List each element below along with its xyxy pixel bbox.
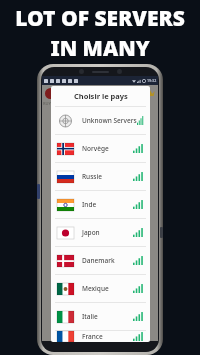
staticText: Mexique bbox=[82, 284, 109, 293]
staticText: Inde bbox=[82, 200, 97, 209]
button[interactable]: Premium bbox=[145, 88, 155, 98]
staticText: Danemark bbox=[82, 256, 115, 265]
staticText: France bbox=[82, 332, 103, 341]
button[interactable]: Japon bbox=[51, 219, 150, 246]
button[interactable]: France bbox=[51, 331, 150, 342]
staticText: RUYP bbox=[43, 101, 54, 106]
staticText: Norvège bbox=[82, 144, 109, 153]
button[interactable]: Norvège bbox=[51, 135, 150, 162]
staticText: 19:32 bbox=[147, 78, 157, 83]
button[interactable]: Inde bbox=[51, 191, 150, 218]
button[interactable]: Italie bbox=[51, 303, 150, 330]
staticText: Choisir le pays bbox=[74, 91, 128, 101]
button[interactable]: Russie bbox=[51, 163, 150, 190]
button[interactable]: Unknown Servers bbox=[51, 107, 150, 134]
button[interactable]: Danemark bbox=[51, 247, 150, 274]
staticText: Unknown Servers bbox=[82, 116, 137, 125]
button[interactable]: Mexique bbox=[51, 275, 150, 302]
staticText: LOT OF SERVERS bbox=[15, 4, 185, 33]
staticText: Italie bbox=[82, 312, 98, 321]
staticText: IN MANY REGIONS bbox=[0, 34, 200, 92]
staticText: Japon bbox=[82, 228, 100, 237]
staticText: Russie bbox=[82, 172, 102, 181]
